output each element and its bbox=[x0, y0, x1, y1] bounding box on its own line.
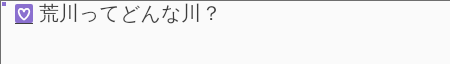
button[interactable]: Favorite bbox=[15, 4, 33, 23]
staticText: 荒川ってどんな川？ bbox=[39, 1, 222, 26]
